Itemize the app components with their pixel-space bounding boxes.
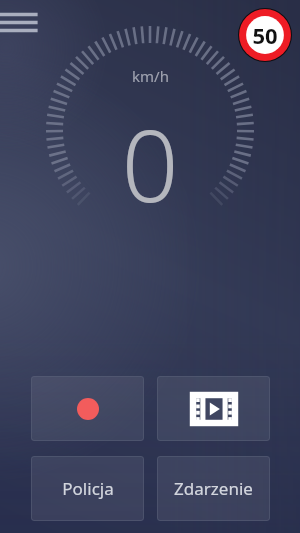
staticText: 0 [121,95,179,231]
staticText: 50 [252,20,278,50]
button[interactable]: Videos [157,376,270,441]
staticText: Zdarzenie [174,477,253,500]
button[interactable]: Policja [31,456,144,521]
button[interactable]: Record [31,376,144,441]
staticText: Policja [62,477,114,500]
staticText: km/h [132,66,169,86]
button[interactable]: Zdarzenie [157,456,270,521]
button[interactable]: Menu [0,8,38,38]
button[interactable]: Speed limit 50 [238,8,292,62]
